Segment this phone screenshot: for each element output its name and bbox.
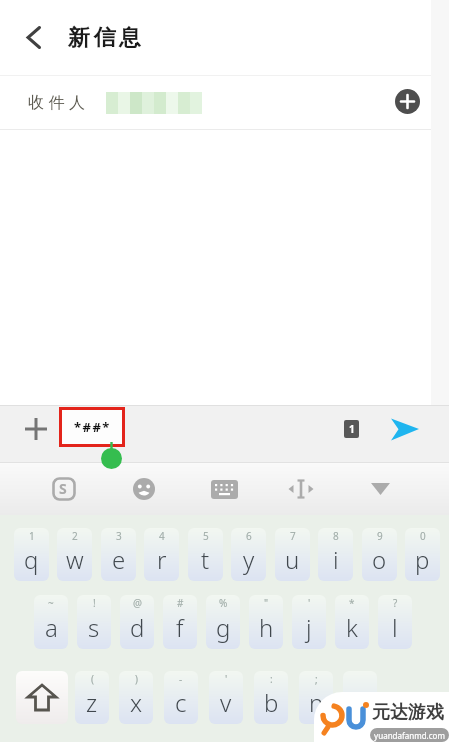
- staticText: S: [59, 479, 67, 498]
- staticText: n: [309, 686, 324, 719]
- staticText: k: [346, 611, 358, 644]
- staticText: ~: [48, 596, 54, 610]
- staticText: j: [306, 611, 312, 644]
- staticText: %: [219, 596, 228, 610]
- staticText: f: [176, 611, 184, 644]
- staticText: u: [285, 543, 300, 576]
- staticText: v: [220, 686, 232, 719]
- staticText: 0: [420, 529, 426, 543]
- staticText: ;: [315, 672, 318, 686]
- staticText: ': [308, 596, 311, 610]
- staticText: x: [130, 686, 143, 719]
- staticText: w: [66, 543, 84, 576]
- staticText: p: [415, 543, 430, 576]
- staticText: d: [130, 611, 145, 644]
- staticText: q: [24, 543, 39, 576]
- staticText: *##*: [74, 418, 111, 436]
- staticText: 1: [29, 529, 35, 543]
- staticText: 9: [377, 529, 383, 543]
- staticText: (: [91, 672, 94, 686]
- staticText: *: [349, 596, 355, 610]
- staticText: yuandafanmd.com: [374, 730, 445, 741]
- staticText: t: [201, 543, 210, 576]
- staticText: 元达游戏: [372, 701, 444, 724]
- staticText: h: [259, 611, 274, 644]
- staticText: 6: [246, 529, 252, 543]
- staticText: b: [264, 686, 279, 719]
- staticText: e: [112, 543, 126, 576]
- staticText: 4: [159, 529, 165, 543]
- staticText: :: [270, 672, 273, 686]
- staticText: 5: [203, 529, 209, 543]
- staticText: l: [392, 611, 398, 644]
- staticText: m: [349, 686, 371, 719]
- staticText: s: [88, 611, 100, 644]
- staticText: 8: [333, 529, 339, 543]
- staticText: r: [157, 543, 167, 576]
- staticText: z: [86, 686, 98, 719]
- staticText: y: [243, 543, 255, 576]
- staticText: o: [372, 543, 387, 576]
- staticText: a: [45, 611, 58, 644]
- staticText: 新信息: [68, 24, 145, 52]
- staticText: ': [225, 672, 228, 686]
- staticText: 1: [349, 422, 355, 436]
- staticText: #: [177, 596, 184, 610]
- staticText: 7: [290, 529, 296, 543]
- staticText: ": [264, 596, 269, 610]
- staticText: 3: [116, 529, 122, 543]
- staticText: 2: [72, 529, 78, 543]
- staticText: ): [135, 672, 138, 686]
- staticText: -: [179, 672, 183, 686]
- staticText: i: [333, 543, 339, 576]
- staticText: c: [175, 686, 187, 719]
- staticText: ?: [393, 596, 398, 610]
- staticText: 收件人: [28, 93, 90, 113]
- staticText: @: [133, 596, 142, 610]
- staticText: g: [216, 611, 231, 644]
- staticText: !: [93, 596, 96, 610]
